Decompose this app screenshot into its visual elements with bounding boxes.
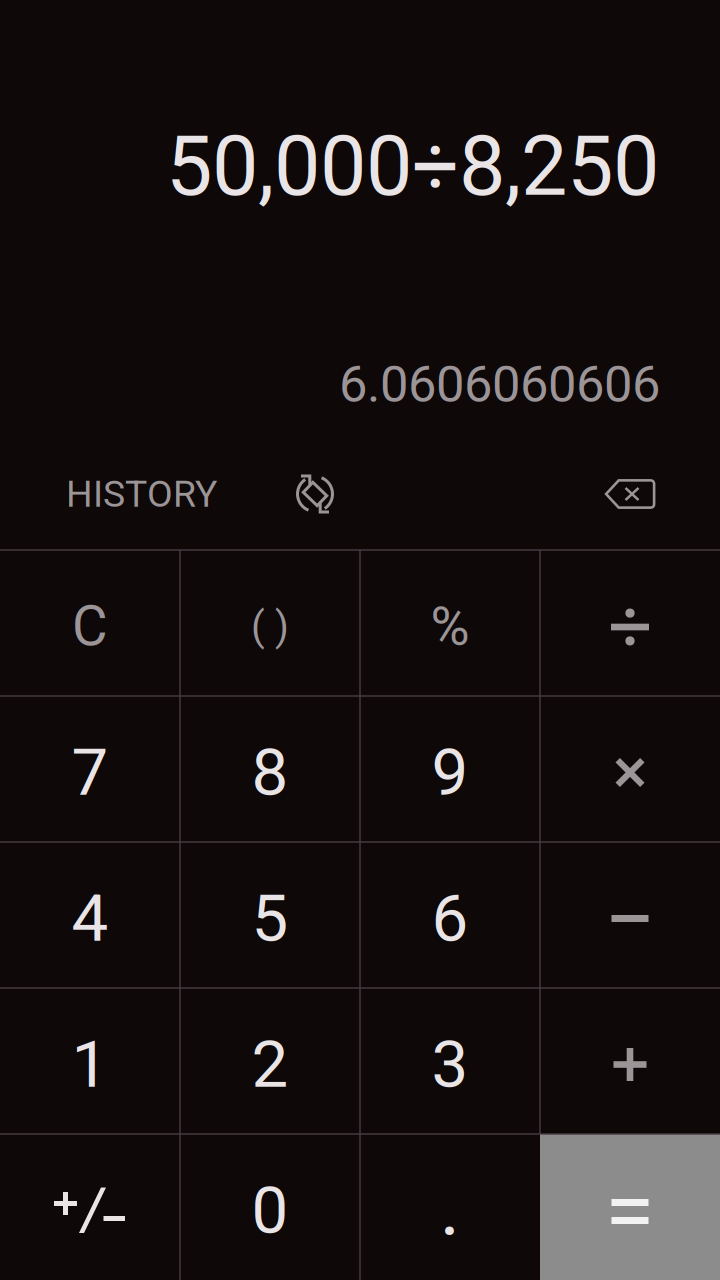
staticText: % — [430, 595, 469, 658]
button[interactable]: Rotate screen — [287, 466, 343, 522]
staticText: . — [439, 1162, 460, 1254]
staticText: HISTORY — [66, 472, 217, 516]
button[interactable]: Equals — [540, 1134, 720, 1280]
button[interactable]: Multiply — [540, 696, 720, 842]
staticText: 4 — [71, 880, 108, 957]
button[interactable]: 1 — [0, 988, 180, 1134]
button[interactable]: 2 — [180, 988, 360, 1134]
staticText: ( ) — [251, 603, 289, 650]
staticText: 8 — [251, 734, 288, 811]
button[interactable]: Add — [540, 988, 720, 1134]
button[interactable]: 9 — [360, 696, 540, 842]
staticText: 1 — [71, 1026, 108, 1103]
button[interactable]: 3 — [360, 988, 540, 1134]
staticText: 6 — [431, 880, 468, 957]
staticText: 7 — [71, 734, 108, 811]
button[interactable]: 8 — [180, 696, 360, 842]
button[interactable]: 7 — [0, 696, 180, 842]
button[interactable]: % — [360, 550, 540, 696]
staticText: 50,000÷8,250 — [166, 118, 659, 215]
button[interactable]: Divide — [540, 550, 720, 696]
button[interactable]: HISTORY — [66, 466, 217, 522]
button[interactable]: 4 — [0, 842, 180, 988]
button[interactable]: 6 — [360, 842, 540, 988]
staticText: 3 — [431, 1026, 468, 1103]
button[interactable]: . — [360, 1134, 540, 1280]
button[interactable]: Subtract — [540, 842, 720, 988]
staticText: 6.0606060606 — [339, 355, 660, 414]
button[interactable]: 5 — [180, 842, 360, 988]
button[interactable]: ( ) — [180, 550, 360, 696]
button[interactable]: C — [0, 550, 180, 696]
staticText: 0 — [251, 1172, 288, 1249]
staticText: 9 — [431, 734, 468, 811]
button[interactable]: Toggle sign — [0, 1134, 180, 1280]
staticText: 5 — [251, 880, 288, 957]
button[interactable]: 0 — [180, 1134, 360, 1280]
button[interactable]: Backspace — [602, 466, 658, 522]
staticText: 2 — [251, 1026, 288, 1103]
staticText: C — [72, 594, 108, 659]
